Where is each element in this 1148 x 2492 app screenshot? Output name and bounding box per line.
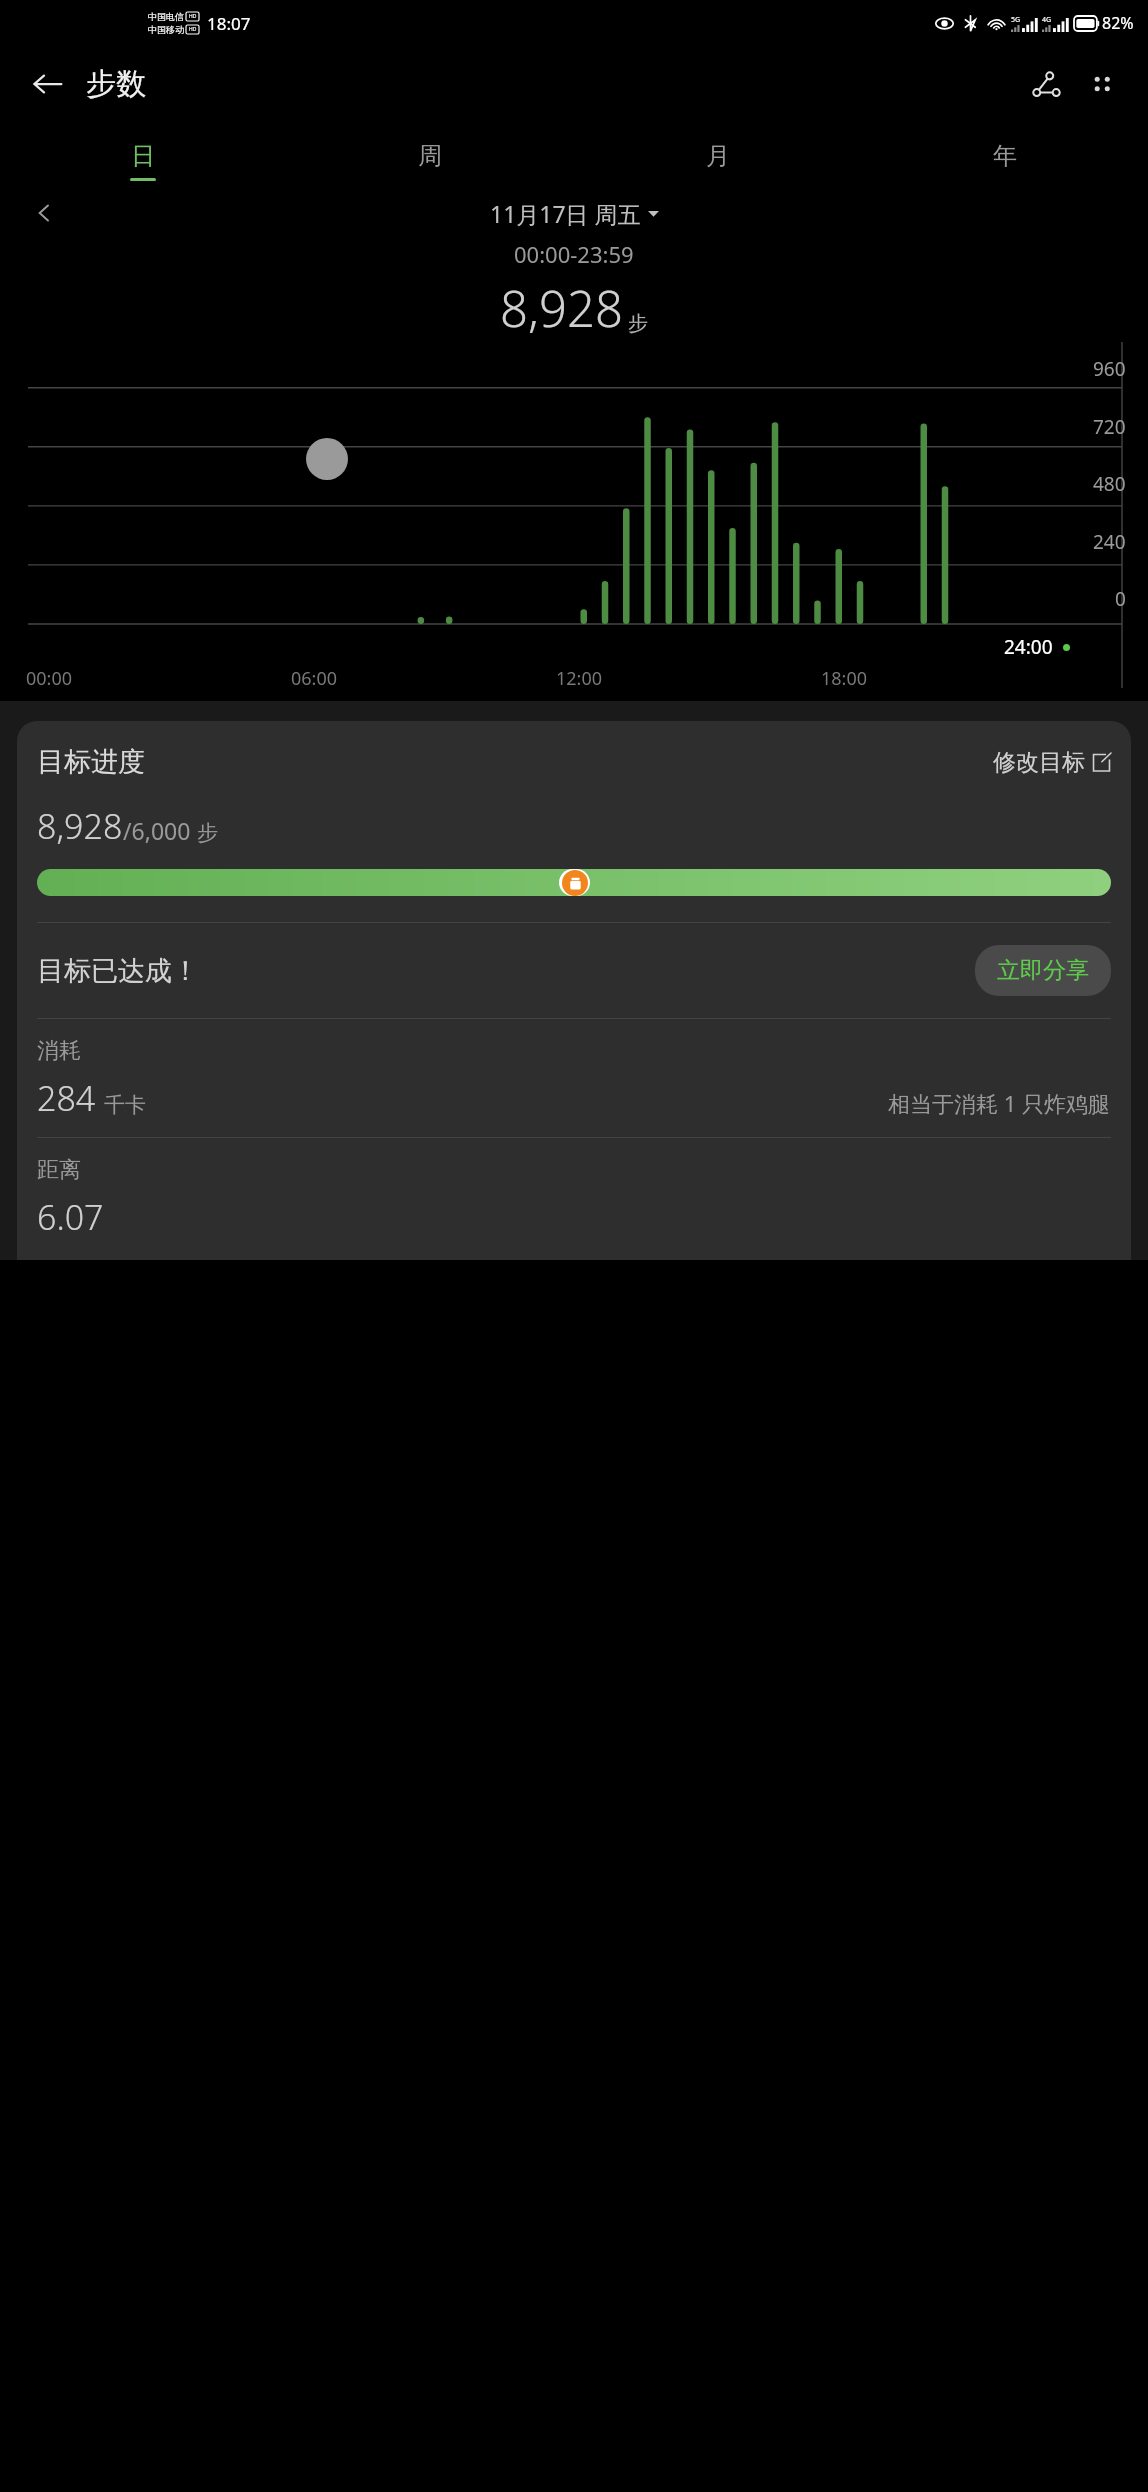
staticText: 步	[628, 311, 648, 336]
staticText: 修改目标	[993, 748, 1085, 777]
staticText: 720	[1093, 414, 1126, 440]
button[interactable]: Previous day	[24, 193, 64, 233]
button[interactable]: Chart scrubber	[306, 438, 348, 480]
staticText: 06:00	[291, 666, 338, 691]
button[interactable]: 周	[402, 135, 458, 187]
staticText: 月	[706, 141, 730, 171]
staticText: 18:07	[207, 12, 251, 35]
staticText: 周	[418, 141, 442, 171]
staticText: 8,928	[37, 803, 123, 849]
staticText: 千卡	[104, 1092, 146, 1118]
staticText: 6.07	[37, 1194, 104, 1240]
staticText: 4G	[1042, 15, 1052, 25]
staticText: 目标已达成！	[37, 954, 199, 988]
staticText: 284	[37, 1075, 96, 1121]
staticText: 中国电信	[148, 11, 184, 22]
staticText: 82%	[1102, 12, 1134, 34]
staticText: 18:00	[821, 666, 868, 691]
staticText: 0	[1115, 586, 1126, 612]
staticText: 日	[131, 141, 155, 171]
staticText: 00:00	[26, 666, 73, 691]
staticText: 24:00	[1004, 634, 1053, 660]
button[interactable]: Share	[1022, 60, 1070, 108]
button[interactable]: 年	[977, 135, 1033, 187]
staticText: HD	[189, 26, 197, 33]
button[interactable]: 日	[115, 135, 171, 187]
staticText: 步数	[86, 65, 146, 103]
staticText: 相当于消耗 1 只炸鸡腿	[888, 1088, 1111, 1118]
button[interactable]: 修改目标	[993, 748, 1111, 777]
staticText: /6,000	[123, 815, 191, 846]
staticText: 中国移动	[148, 24, 184, 35]
staticText: 年	[993, 141, 1017, 171]
button[interactable]: 11月17日 周五	[490, 198, 659, 229]
staticText: 8,928	[500, 275, 623, 342]
staticText: 消耗	[37, 1037, 81, 1065]
button[interactable]: 月	[690, 135, 746, 187]
staticText: 距离	[37, 1156, 81, 1184]
staticText: 12:00	[556, 666, 603, 691]
staticText: 240	[1093, 529, 1126, 555]
staticText: HD	[189, 13, 197, 20]
staticText: 立即分享	[997, 956, 1089, 985]
staticText: 11月17日 周五	[490, 198, 641, 229]
staticText: 00:00-23:59	[514, 239, 634, 269]
button[interactable]: 消耗	[37, 1037, 1111, 1121]
staticText: 5G	[1011, 15, 1021, 25]
button[interactable]: 立即分享	[975, 945, 1111, 996]
staticText: 步	[197, 820, 218, 846]
staticText: 480	[1093, 471, 1126, 497]
button[interactable]: Back	[22, 59, 72, 109]
button[interactable]: More options	[1078, 60, 1126, 108]
staticText: 960	[1093, 356, 1126, 382]
staticText: 目标进度	[37, 745, 145, 779]
